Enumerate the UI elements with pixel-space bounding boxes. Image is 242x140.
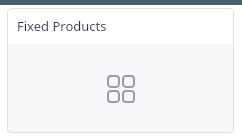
other: Products grid (107, 75, 135, 103)
button[interactable]: Fixed Products (7, 8, 234, 133)
staticText: Fixed Products (17, 17, 107, 35)
